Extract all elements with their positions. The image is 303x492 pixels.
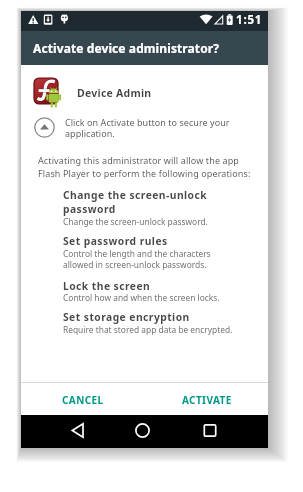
staticText: allowed in screen-unlock passwords. [63, 259, 207, 270]
staticText: Flash Player to perform the following op… [38, 167, 251, 179]
staticText: Change the screen-unlock password. [63, 216, 208, 227]
staticText: Require that stored app data be encrypte… [63, 324, 233, 335]
staticText: password [63, 202, 116, 216]
button[interactable] [126, 415, 158, 448]
staticText: application. [65, 127, 115, 139]
staticText: Click on Activate button to secure your [65, 116, 230, 128]
staticText: 1:51 [236, 12, 263, 28]
staticText: Device Admin [77, 86, 152, 100]
button[interactable] [34, 78, 62, 108]
button[interactable]: CANCEL [45, 387, 121, 413]
staticText: Change the screen-unlock [63, 188, 208, 202]
staticText: Set password rules [63, 234, 168, 248]
button[interactable] [62, 415, 94, 448]
staticText: CANCEL [62, 393, 104, 407]
staticText: Set storage encryption [63, 310, 190, 324]
staticText: Lock the screen [63, 279, 151, 293]
staticText: Activate device administrator? [33, 40, 220, 56]
staticText: ACTIVATE [182, 393, 232, 407]
button[interactable] [194, 415, 226, 448]
staticText: Control the length and the characters [63, 248, 211, 259]
staticText: Activating this administrator will allow… [38, 154, 240, 166]
button[interactable]: ACTIVATE [169, 387, 245, 413]
staticText: Control how and when the screen locks. [63, 292, 220, 303]
